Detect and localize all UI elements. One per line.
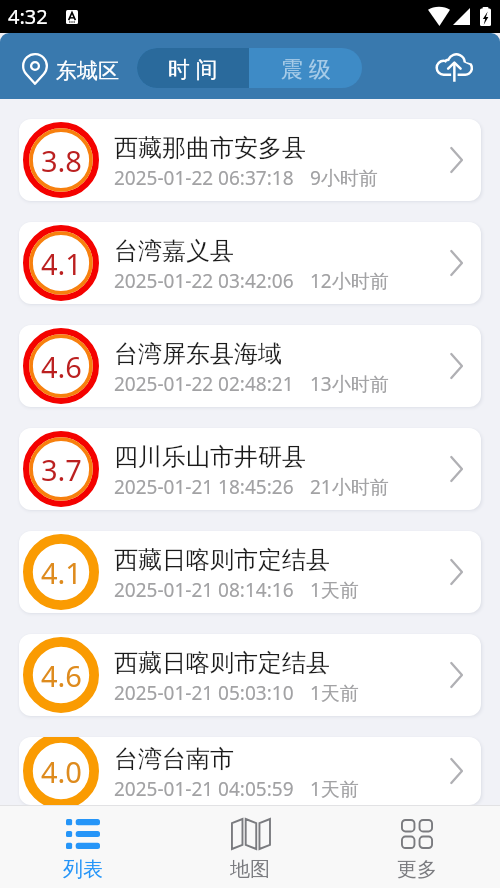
button[interactable]: 地图	[166, 806, 333, 888]
staticText: 1天前	[310, 577, 359, 603]
button[interactable]: 4.1	[19, 531, 481, 613]
staticText: 4.6	[41, 656, 82, 695]
staticText: 列表	[63, 857, 103, 882]
staticText: 4:32	[8, 3, 48, 30]
staticText: 4.6	[41, 347, 82, 386]
staticText: 3.8	[41, 141, 82, 180]
staticText: 西藏日喀则市定结县	[114, 648, 330, 678]
staticText: 21小时前	[310, 474, 389, 500]
staticText: 2025-01-21 04:05:59	[114, 776, 294, 802]
staticText: 更多	[397, 857, 437, 882]
staticText: 西藏日喀则市定结县	[114, 545, 330, 575]
staticText: 台湾嘉义县	[114, 236, 234, 266]
button[interactable]: Upload to cloud	[425, 38, 481, 94]
staticText: 4.0	[41, 752, 82, 791]
button[interactable]: 时 间	[137, 48, 249, 88]
staticText: 东城区	[56, 58, 119, 84]
button[interactable]: 4.0	[19, 737, 481, 805]
staticText: 2025-01-22 06:37:18	[114, 165, 294, 191]
staticText: 2025-01-21 05:03:10	[114, 680, 294, 706]
staticText: 4.1	[41, 244, 82, 283]
staticText: 西藏那曲市安多县	[114, 133, 306, 163]
staticText: 2025-01-21 18:45:26	[114, 474, 294, 500]
staticText: 3.7	[41, 450, 82, 489]
staticText: 四川乐山市井研县	[114, 442, 306, 472]
staticText: 2025-01-22 02:48:21	[114, 371, 294, 397]
staticText: 台湾台南市	[114, 744, 234, 774]
staticText: 9小时前	[310, 165, 378, 191]
button[interactable]: 3.8	[19, 119, 481, 201]
staticText: 1天前	[310, 680, 359, 706]
button[interactable]: 震 级	[249, 48, 362, 88]
staticText: 4.1	[41, 553, 82, 592]
staticText: 2025-01-21 08:14:16	[114, 577, 294, 603]
staticText: 13小时前	[310, 371, 389, 397]
staticText: 12小时前	[310, 268, 389, 294]
button[interactable]: 4.1	[19, 222, 481, 304]
button[interactable]: 3.7	[19, 428, 481, 510]
button[interactable]: 更多	[333, 806, 500, 888]
button[interactable]: 4.6	[19, 325, 481, 407]
staticText: 台湾屏东县海域	[114, 339, 282, 369]
staticText: 时 间	[168, 53, 218, 83]
staticText: 1天前	[310, 776, 359, 802]
staticText: 地图	[230, 857, 270, 882]
button[interactable]: 东城区	[22, 53, 119, 85]
staticText: 震 级	[281, 53, 331, 83]
staticText: 2025-01-22 03:42:06	[114, 268, 294, 294]
button[interactable]: 列表	[0, 806, 166, 888]
button[interactable]: 4.6	[19, 634, 481, 716]
